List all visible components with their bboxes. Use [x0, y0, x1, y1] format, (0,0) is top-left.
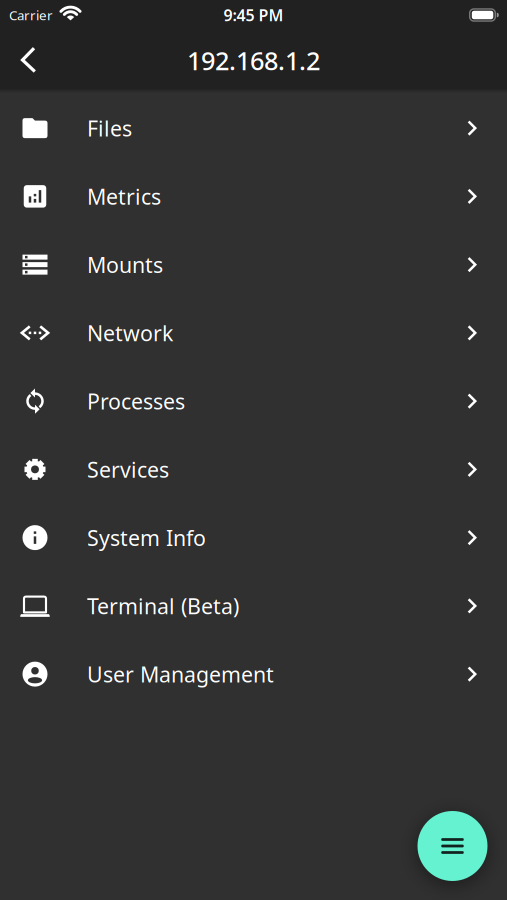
button[interactable]: Processes	[0, 367, 507, 435]
button[interactable]: Back	[0, 30, 49, 88]
staticText: Terminal (Beta)	[87, 592, 239, 620]
staticText: 9:45 PM	[223, 4, 283, 26]
staticText: User Management	[87, 660, 274, 688]
button[interactable]: Files	[0, 94, 507, 162]
button[interactable]: Network	[0, 299, 507, 367]
button[interactable]: Mounts	[0, 230, 507, 299]
staticText: Metrics	[87, 182, 161, 210]
button[interactable]: Terminal (Beta)	[0, 572, 507, 640]
staticText: System Info	[87, 523, 206, 552]
staticText: Network	[87, 319, 173, 347]
staticText: Processes	[87, 387, 185, 415]
staticText: Carrier	[9, 6, 53, 24]
button[interactable]: Services	[0, 435, 507, 503]
button[interactable]: Metrics	[0, 162, 507, 230]
staticText: Mounts	[87, 250, 163, 279]
button[interactable]: System Info	[0, 503, 507, 572]
staticText: 192.168.1.2	[187, 44, 320, 77]
button[interactable]: Menu	[417, 811, 487, 881]
button[interactable]: User Management	[0, 640, 507, 708]
staticText: Services	[87, 455, 169, 483]
staticText: Files	[87, 114, 132, 142]
